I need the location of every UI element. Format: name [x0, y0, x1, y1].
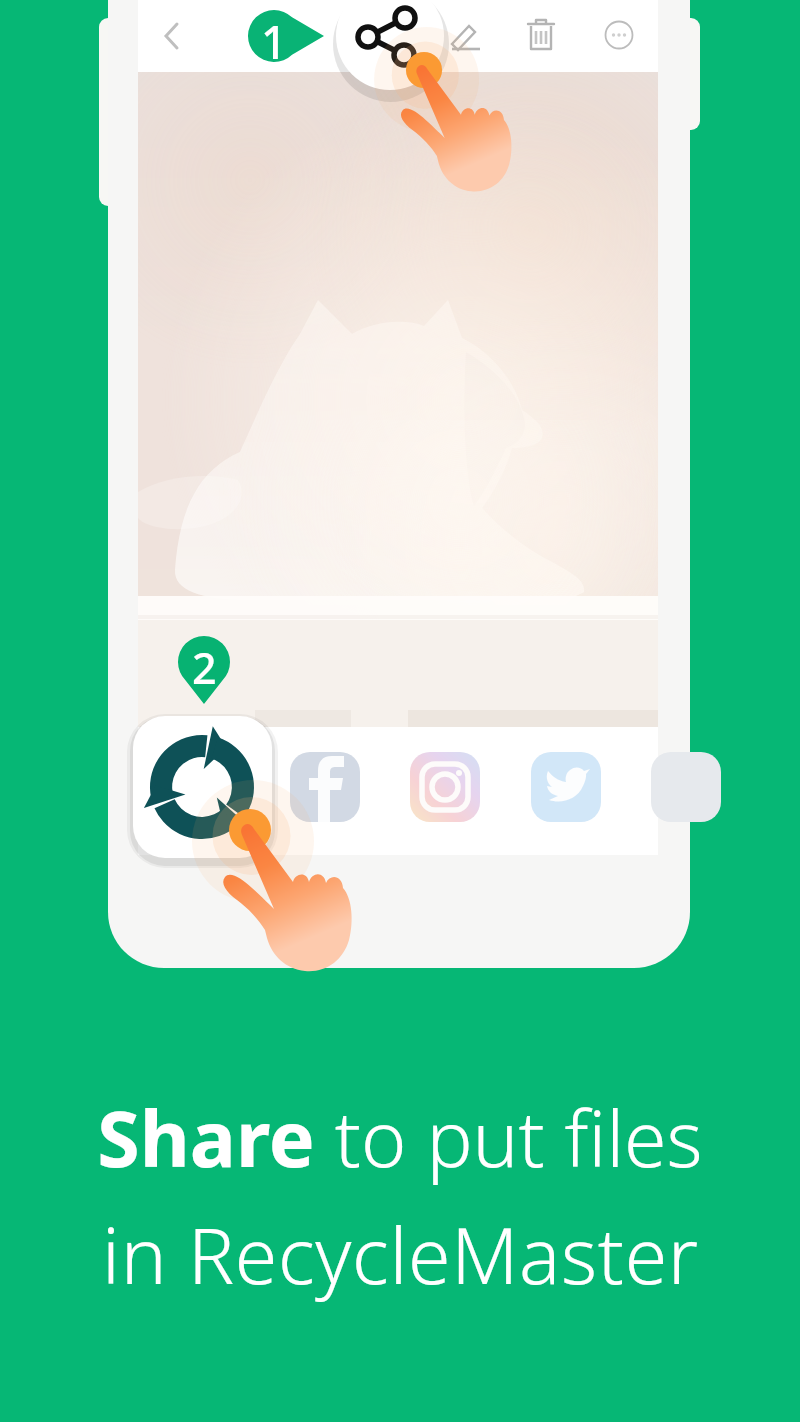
- button[interactable]: More options: [587, 3, 651, 67]
- button[interactable]: More share targets: [651, 752, 721, 822]
- staticText: 1: [261, 11, 287, 59]
- button[interactable]: Share to Instagram: [410, 752, 480, 822]
- button[interactable]: Edit: [431, 4, 495, 68]
- button[interactable]: Share to Facebook: [290, 752, 360, 822]
- button[interactable]: Back: [144, 4, 208, 68]
- button[interactable]: Share: [336, 0, 444, 90]
- button[interactable]: Share to RecycleMaster: [133, 716, 272, 858]
- staticText: 2: [192, 638, 217, 686]
- staticText: in RecycleMaster: [102, 1202, 699, 1307]
- staticText: Share to put files: [97, 1085, 703, 1190]
- button[interactable]: Share to Twitter: [531, 752, 601, 822]
- button[interactable]: Delete: [509, 4, 573, 68]
